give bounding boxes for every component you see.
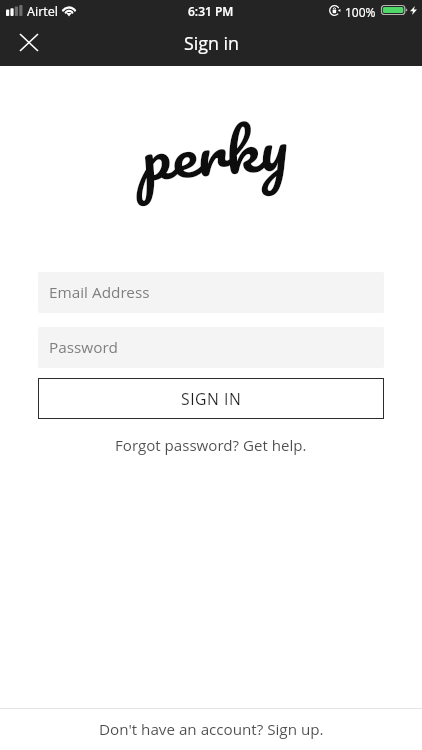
button[interactable]: Close <box>0 20 58 64</box>
staticText: 6:31 PM <box>188 3 234 19</box>
staticText: Airtel <box>27 3 58 20</box>
staticText: 100% <box>345 4 376 20</box>
staticText: SIGN IN <box>181 388 242 409</box>
staticText: Sign in <box>184 31 239 55</box>
button[interactable]: Don't have an account? Sign up. <box>0 709 422 750</box>
staticText: Password <box>49 337 118 358</box>
button[interactable]: Email Address <box>38 272 384 313</box>
button[interactable]: Password <box>38 327 384 368</box>
staticText: Email Address <box>49 282 150 303</box>
button[interactable]: Forgot password? Get help. <box>38 435 384 456</box>
staticText: Don't have an account? Sign up. <box>99 719 324 740</box>
staticText: perky <box>137 98 291 206</box>
staticText: Forgot password? Get help. <box>115 435 307 456</box>
button[interactable]: SIGN IN <box>38 378 384 419</box>
